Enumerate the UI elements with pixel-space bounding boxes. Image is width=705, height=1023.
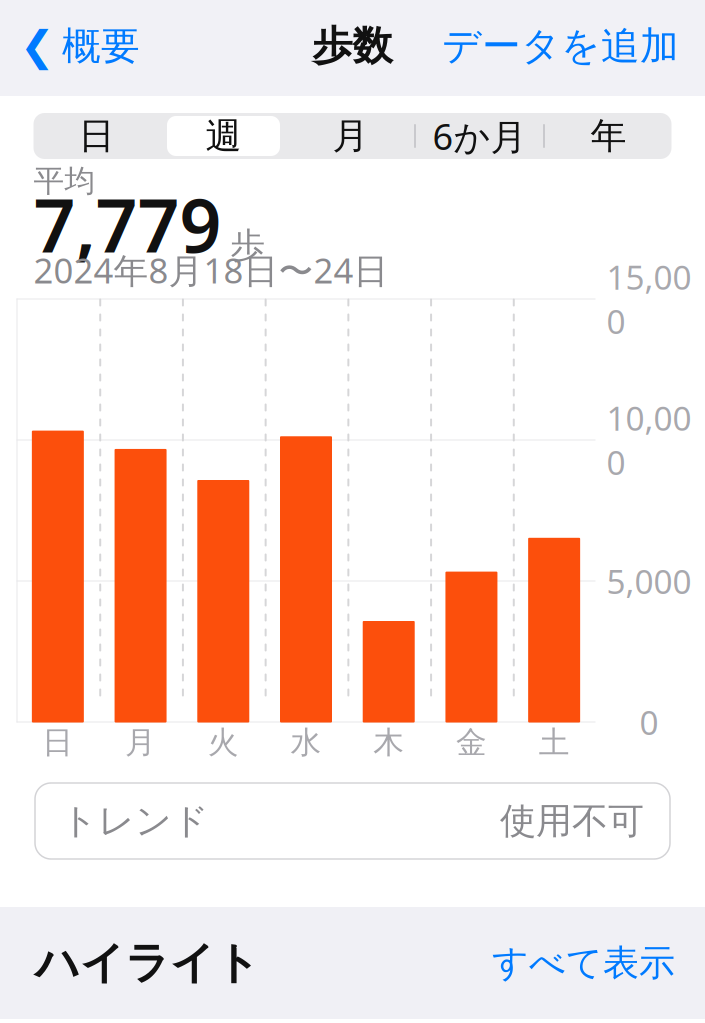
staticText: 歩数 [312,21,392,70]
staticText: 月 [332,114,368,158]
staticText: 0 [639,700,658,744]
button[interactable]: 6か月 [416,113,543,159]
staticText: 日 [78,114,114,158]
staticText: 水 [290,724,321,761]
staticText: 年 [590,114,626,158]
staticText: 火 [208,724,239,761]
staticText: 7,779 [33,175,221,273]
staticText: 歩 [230,224,265,267]
staticText: 金 [456,724,487,761]
staticText: データを追加 [442,22,679,70]
staticText: 週 [205,114,241,158]
button[interactable]: すべて表示 [478,933,675,993]
staticText: 概要 [62,22,140,70]
staticText: 土 [539,724,570,761]
button[interactable]: 月 [287,113,414,159]
button[interactable]: 日 [33,113,160,159]
staticText: ❮ [20,22,55,69]
staticText: 月 [125,724,156,761]
staticText: 使用不可 [500,799,644,843]
staticText: 2024年8月18日〜24日 [33,247,388,293]
staticText: 平均 [33,162,95,200]
button[interactable]: ❮ [0,15,150,77]
button[interactable]: トレンド [35,783,670,859]
staticText: 10,000 [606,396,691,484]
staticText: 日 [42,724,73,761]
staticText: すべて表示 [492,941,675,985]
staticText: 15,000 [606,255,691,343]
button[interactable]: 年 [545,113,672,159]
staticText: 木 [373,724,404,761]
staticText: 6か月 [432,112,526,160]
staticText: ハイライト [35,936,260,990]
staticText: トレンド [61,799,209,843]
button[interactable]: データを追加 [432,15,705,77]
button[interactable]: 週 [160,113,287,159]
staticText: 5,000 [606,559,691,603]
